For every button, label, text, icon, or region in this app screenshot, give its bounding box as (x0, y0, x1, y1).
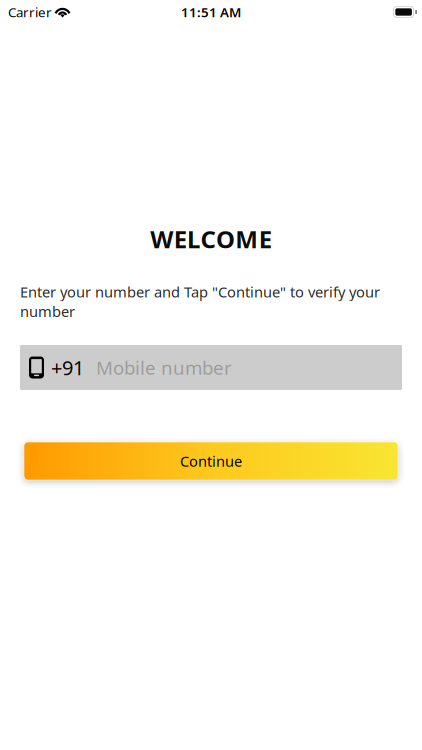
staticText: WELCOME (150, 223, 272, 255)
staticText: Continue (180, 451, 242, 471)
button[interactable]: Continue (24, 442, 398, 480)
staticText: 11:51 AM (181, 3, 241, 21)
staticText: +91 (51, 354, 84, 381)
staticText: Enter your number and Tap "Continue" to … (20, 282, 380, 321)
staticText: Mobile number (96, 355, 232, 380)
staticText: Carrier (8, 3, 52, 21)
button[interactable]: +91 (20, 345, 402, 390)
